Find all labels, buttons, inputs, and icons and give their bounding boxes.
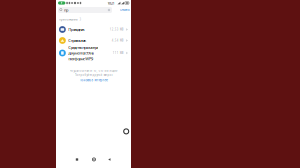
button[interactable]: Recent apps [76,158,78,161]
staticText: Попробуйте другой запрос [74,73,112,77]
button[interactable]: Справочник [56,35,131,46]
staticText: 18:21 [107,0,115,6]
button[interactable]: Back [108,158,110,161]
button[interactable]: Отмена [120,8,129,12]
staticText: документов 99 (на [68,50,94,56]
button[interactable]: Tap indicator [124,129,129,134]
button[interactable]: Поискать в Интернете [79,77,107,82]
staticText: пр [64,7,68,13]
staticText: Проводник [68,27,84,32]
staticText: Не удалось найти то, что Вы ищете? [69,69,117,72]
staticText: платформе WPS) [68,56,93,61]
staticText: Средство просмотра [68,45,98,50]
staticText: 111 MB [113,51,124,55]
staticText: Справочник [68,38,86,43]
staticText: Поискать в Интернете [79,78,107,82]
staticText: Отмена [120,8,129,12]
button[interactable]: Средство просмотра [56,46,131,60]
staticText: 12.53 MB [110,28,124,31]
staticText: 4.54 MB [112,39,124,42]
staticText: 3 [79,18,81,21]
button[interactable]: Проводник [56,24,131,35]
staticText: Приложения [59,18,78,21]
button[interactable]: Home [92,158,95,161]
